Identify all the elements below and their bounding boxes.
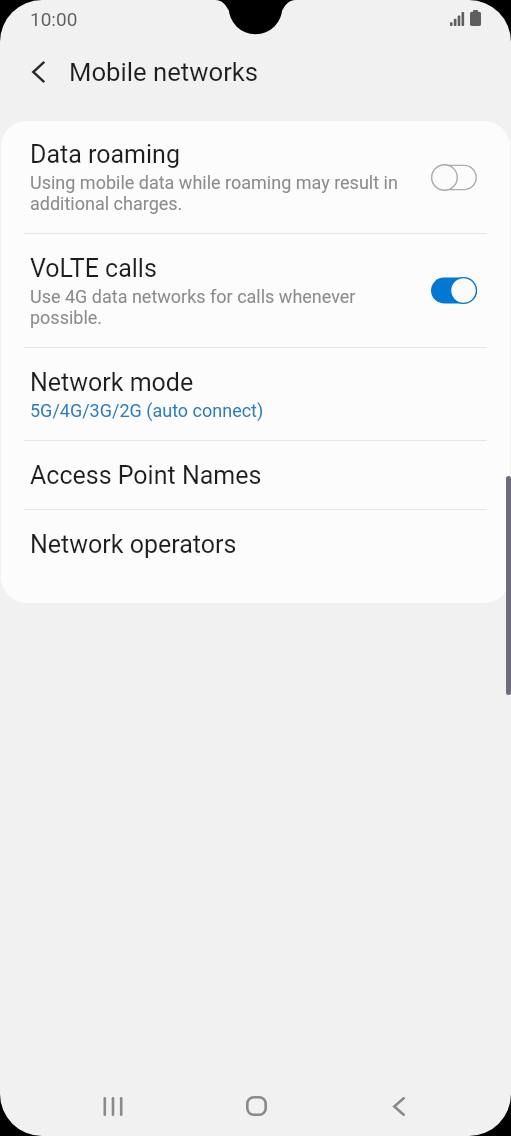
- staticText: Using mobile data while roaming may resu…: [30, 172, 398, 214]
- button[interactable]: Recent apps: [77, 1074, 149, 1136]
- button[interactable]: Data roaming: [1, 121, 510, 233]
- staticText: Use 4G data networks for calls whenever …: [30, 286, 356, 328]
- button[interactable]: Home: [220, 1074, 292, 1136]
- staticText: Mobile networks: [69, 57, 259, 87]
- button[interactable]: Network mode: [1, 348, 510, 440]
- button[interactable]: Back: [363, 1074, 435, 1136]
- staticText: 5G/4G/3G/2G (auto connect): [30, 400, 264, 421]
- button[interactable]: On: [431, 277, 477, 304]
- staticText: Network operators: [30, 530, 237, 559]
- button[interactable]: VoLTE calls: [1, 234, 510, 347]
- staticText: Data roaming: [30, 140, 180, 169]
- staticText: Network mode: [30, 368, 194, 397]
- staticText: 10:00: [30, 8, 78, 30]
- button[interactable]: Navigate up: [19, 52, 59, 92]
- staticText: VoLTE calls: [30, 254, 157, 283]
- button[interactable]: Network operators: [1, 510, 510, 578]
- button[interactable]: Off: [431, 164, 477, 191]
- button[interactable]: Access Point Names: [1, 441, 510, 509]
- staticText: Access Point Names: [30, 461, 262, 490]
